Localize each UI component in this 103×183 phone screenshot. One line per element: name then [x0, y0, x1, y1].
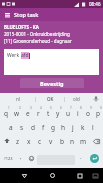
button[interactable]: m: [78, 134, 89, 148]
button[interactable]: n: [67, 134, 78, 148]
button[interactable]: ,: [16, 148, 26, 168]
staticText: k: [81, 123, 85, 132]
staticText: 9: [90, 106, 92, 110]
staticText: 2: [19, 106, 21, 110]
staticText: t: [47, 109, 50, 118]
button[interactable]: 2: [11, 105, 22, 120]
button[interactable]: l: [88, 120, 98, 134]
button[interactable]: h: [58, 120, 68, 134]
staticText: afd: [21, 52, 29, 59]
button[interactable]: 7: [63, 105, 73, 120]
staticText: b: [60, 137, 64, 146]
staticText: 4: [40, 106, 42, 110]
staticText: y: [56, 109, 60, 118]
button[interactable]: z: [13, 134, 23, 148]
staticText: u: [66, 109, 71, 118]
button[interactable]: x: [23, 134, 34, 148]
staticText: g: [51, 123, 55, 132]
staticText: old: [73, 96, 80, 102]
staticText: p: [96, 109, 100, 118]
staticText: 3: [30, 106, 32, 110]
button[interactable]: 6: [53, 105, 63, 120]
button[interactable]: .: [76, 148, 86, 168]
staticText: Stop task: [14, 11, 39, 18]
button[interactable]: k: [78, 120, 88, 134]
staticText: c: [38, 137, 42, 146]
staticText: i: [77, 109, 79, 118]
button[interactable]: Werk: [4, 49, 99, 75]
staticText: Werk: [7, 52, 21, 59]
staticText: q: [4, 109, 8, 118]
staticText: x: [27, 137, 31, 146]
staticText: 8: [80, 106, 82, 110]
staticText: 1: [8, 106, 10, 110]
button[interactable]: 8: [73, 105, 83, 120]
staticText: ,: [20, 153, 22, 161]
staticText: v: [49, 137, 53, 146]
button[interactable]: g: [48, 120, 58, 134]
button[interactable]: 5: [43, 105, 53, 120]
button[interactable]: s: [16, 120, 27, 134]
button[interactable]: 1: [0, 105, 11, 120]
staticText: 08:46: [89, 1, 101, 7]
button[interactable]: nl: [0, 93, 36, 105]
button[interactable]: Back: [10, 168, 38, 183]
button[interactable]: f: [38, 120, 48, 134]
staticText: 7: [70, 106, 72, 110]
staticText: f: [42, 123, 45, 132]
staticText: o: [86, 109, 90, 118]
button[interactable]: Open navigation menu: [0, 8, 14, 21]
staticText: z: [16, 137, 20, 146]
staticText: w: [14, 109, 20, 118]
button[interactable]: Shift: [0, 134, 13, 148]
button[interactable]: OK: [36, 93, 65, 105]
staticText: 5: [50, 106, 52, 110]
staticText: 2015-0001 - Onkruidbestrijding: [4, 31, 70, 37]
staticText: OK: [47, 96, 54, 102]
button[interactable]: 0: [93, 105, 103, 120]
button[interactable]: 9: [83, 105, 93, 120]
button[interactable]: Voice input: [88, 93, 103, 105]
button[interactable]: Emoji: [26, 148, 36, 168]
staticText: Bevestig: [40, 80, 64, 87]
button[interactable]: Backspace: [89, 134, 103, 148]
button[interactable]: old: [65, 93, 88, 105]
staticText: j: [72, 123, 74, 132]
staticText: 6: [60, 106, 62, 110]
staticText: BLUELOFTS - KA: [4, 24, 39, 30]
staticText: s: [20, 123, 24, 132]
button[interactable]: d: [27, 120, 38, 134]
staticText: a: [9, 123, 13, 132]
staticText: 0: [100, 106, 102, 110]
staticText: [11] Groenonderhoud - dagnaar: [4, 38, 72, 44]
button[interactable]: j: [68, 120, 78, 134]
button[interactable]: ?123: [0, 148, 16, 168]
button[interactable]: Enter: [86, 148, 103, 168]
button[interactable]: Recent apps: [66, 168, 94, 183]
button[interactable]: 4: [33, 105, 43, 120]
staticText: l: [92, 123, 94, 132]
staticText: ?123: [4, 156, 13, 161]
staticText: r: [37, 109, 40, 118]
staticText: d: [31, 123, 35, 132]
staticText: e: [26, 109, 30, 118]
button[interactable]: a: [5, 120, 16, 134]
button[interactable]: Change keyboard: [87, 168, 103, 183]
button[interactable]: c: [34, 134, 45, 148]
staticText: h: [61, 123, 66, 132]
button[interactable]: Home: [38, 168, 66, 183]
staticText: .: [80, 153, 82, 161]
staticText: nl: [16, 96, 20, 102]
button[interactable]: 3: [22, 105, 33, 120]
staticText: m: [80, 137, 87, 146]
button[interactable]: v: [45, 134, 56, 148]
button[interactable]: b: [56, 134, 67, 148]
staticText: n: [70, 137, 75, 146]
button[interactable]: Bevestig: [20, 78, 84, 88]
